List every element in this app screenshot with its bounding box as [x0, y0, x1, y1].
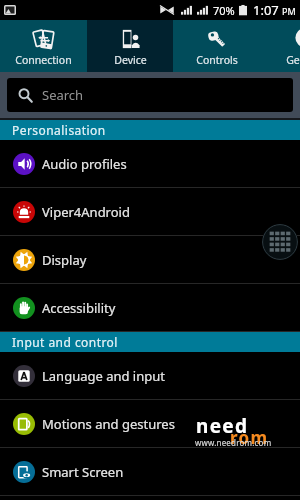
button[interactable]: Motions and gestures: [0, 400, 300, 448]
staticText: 70%: [213, 3, 235, 18]
staticText: General: [286, 53, 300, 67]
button[interactable]: Controls tab: [173, 20, 261, 72]
button[interactable]: Audio profiles: [0, 140, 300, 188]
staticText: www.needrom.com: [195, 437, 272, 448]
staticText: Device: [114, 53, 147, 67]
staticText: Display: [42, 251, 87, 269]
staticText: 1:07: [253, 1, 279, 19]
staticText: need: [196, 413, 249, 439]
staticText: Viper4Android: [42, 203, 130, 221]
staticText: Audio profiles: [42, 155, 127, 173]
staticText: Accessibility: [42, 299, 116, 317]
staticText: Personalisation: [12, 122, 106, 138]
staticText: Motions and gestures: [42, 415, 175, 433]
staticText: Input and control: [12, 334, 118, 350]
button[interactable]: Display: [0, 236, 300, 284]
staticText: PM: [282, 5, 296, 17]
staticText: Connection: [15, 53, 72, 67]
button[interactable]: Smart Screen: [0, 448, 300, 496]
staticText: Controls: [196, 53, 238, 67]
button[interactable]: Viper4Android: [0, 188, 300, 236]
staticText: Search: [42, 86, 84, 104]
button[interactable]: Device tab: [87, 20, 173, 72]
button[interactable]: General tab: [261, 20, 300, 72]
button[interactable]: Apps: [262, 224, 298, 260]
staticText: Smart Screen: [42, 463, 124, 481]
staticText: rom: [230, 426, 269, 449]
button[interactable]: Accessibility: [0, 284, 300, 332]
button[interactable]: Connection tab: [0, 20, 87, 72]
button[interactable]: Language and input: [0, 352, 300, 400]
staticText: Language and input: [42, 367, 165, 385]
button[interactable]: Search: [7, 78, 293, 112]
